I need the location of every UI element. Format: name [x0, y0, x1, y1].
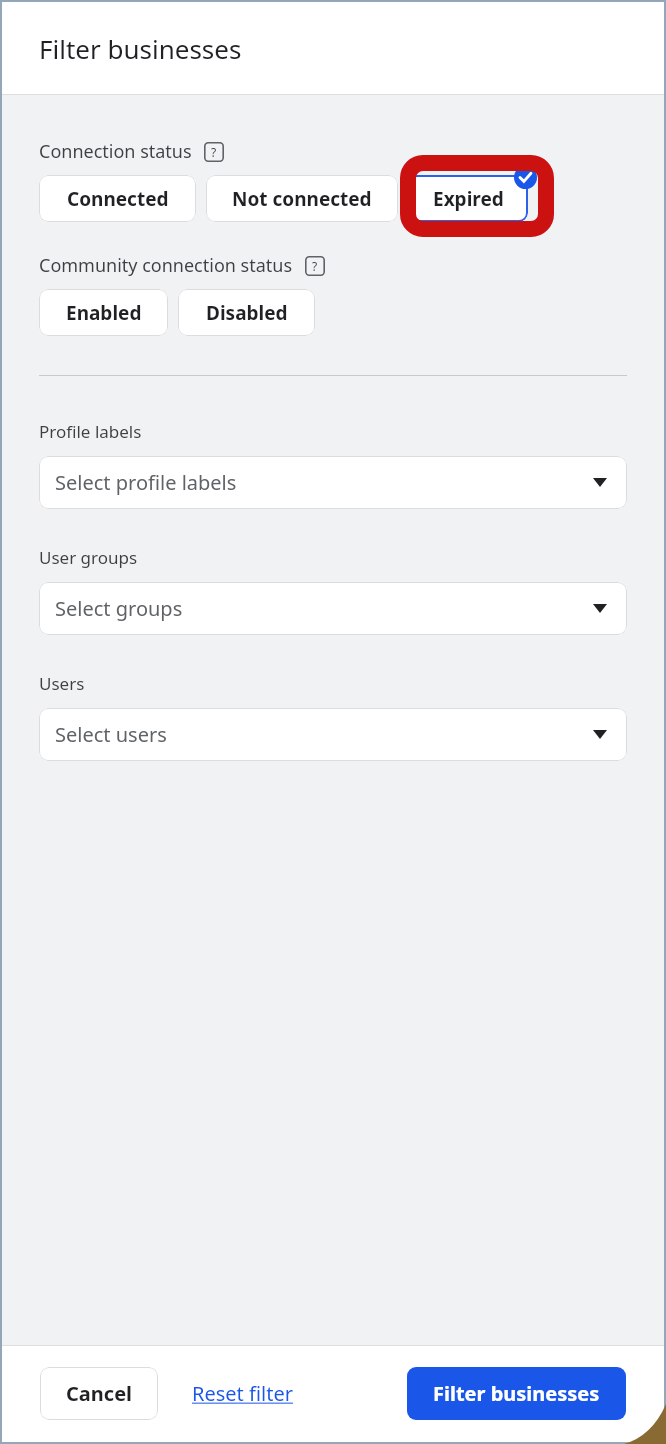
staticText: Expired [433, 186, 504, 212]
staticText: Filter businesses [39, 31, 242, 66]
staticText: Select groups [55, 595, 183, 622]
staticText: Select users [55, 721, 167, 748]
button[interactable]: Expired [408, 175, 528, 222]
staticText: Enabled [66, 300, 142, 326]
staticText: ? [312, 258, 318, 274]
button[interactable]: Connected [39, 175, 196, 222]
button[interactable]: Select users [39, 708, 627, 761]
button[interactable]: Filter businesses [407, 1367, 626, 1420]
button[interactable]: Select groups [39, 582, 627, 635]
button[interactable]: Not connected [206, 175, 398, 222]
staticText: Reset filter [192, 1380, 293, 1407]
button[interactable]: Select profile labels [39, 456, 627, 509]
button[interactable]: Enabled [39, 289, 168, 336]
button[interactable]: Reset filter [192, 1370, 293, 1417]
staticText: Disabled [206, 300, 288, 326]
staticText: Users [39, 672, 85, 695]
staticText: User groups [39, 546, 138, 569]
staticText: Connected [67, 186, 169, 212]
staticText: Filter businesses [433, 1380, 600, 1407]
staticText: Not connected [232, 186, 372, 212]
staticText: Select profile labels [55, 469, 237, 496]
staticText: Community connection status [39, 253, 293, 278]
button[interactable]: Cancel [40, 1367, 158, 1420]
staticText: Connection status [39, 139, 192, 164]
button[interactable]: Help [305, 256, 325, 276]
staticText: Cancel [66, 1380, 133, 1407]
button[interactable]: Help [204, 142, 224, 162]
staticText: ? [211, 144, 217, 160]
button[interactable]: Disabled [178, 289, 315, 336]
staticText: Profile labels [39, 420, 142, 443]
